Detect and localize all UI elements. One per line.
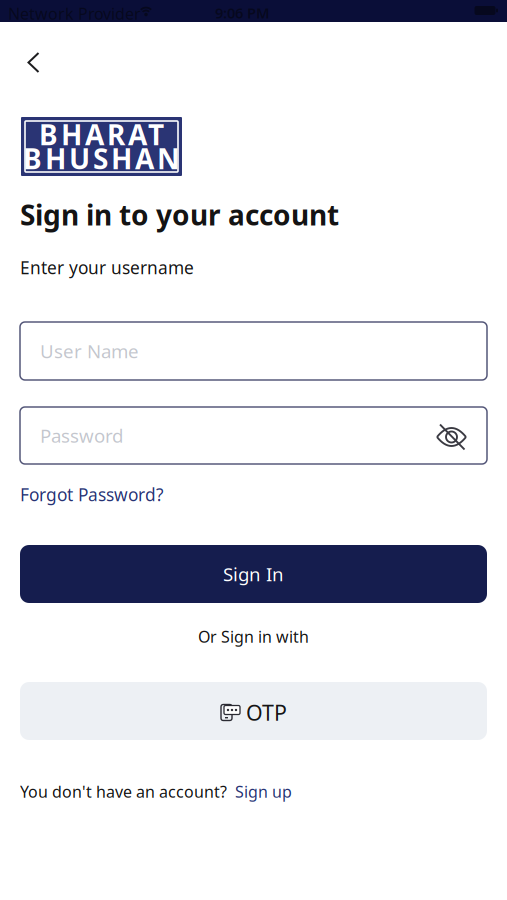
staticText: Sign in to your account bbox=[20, 196, 339, 233]
staticText: Or Sign in with bbox=[198, 626, 309, 647]
staticText: You don't have an account? bbox=[20, 781, 227, 802]
staticText: OTP bbox=[246, 698, 287, 727]
button[interactable]: Sign In bbox=[20, 545, 487, 603]
staticText: Sign up bbox=[235, 781, 292, 802]
staticText: 9:06 PM bbox=[215, 3, 270, 22]
staticText: User Name bbox=[40, 339, 139, 363]
staticText: BHUSHAN bbox=[23, 140, 180, 177]
button[interactable]: Password bbox=[20, 407, 487, 464]
staticText: Forgot Password? bbox=[20, 483, 164, 506]
button[interactable]: Show password bbox=[432, 420, 471, 454]
staticText: Network Provider bbox=[8, 3, 141, 24]
staticText: Sign In bbox=[223, 562, 284, 586]
button[interactable]: OTP bbox=[20, 682, 487, 740]
button[interactable]: Forgot Password? bbox=[20, 483, 164, 506]
button[interactable]: User Name bbox=[20, 322, 487, 380]
staticText: Password bbox=[40, 423, 123, 448]
button[interactable]: Back bbox=[19, 44, 48, 81]
staticText: Enter your username bbox=[20, 256, 194, 279]
staticText: BHARAT bbox=[39, 116, 164, 153]
button[interactable]: Sign up bbox=[235, 781, 292, 802]
